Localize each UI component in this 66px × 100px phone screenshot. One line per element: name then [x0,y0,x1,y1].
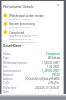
button[interactable]: System processing [9,22,35,29]
staticText: System processing [9,22,35,26]
staticText: Address [3,77,13,81]
staticText: 2024-06-10 14:41:55 [9,35,31,38]
staticText: Network [3,73,14,77]
staticText: Actual amount [3,69,21,73]
button[interactable]: Withdrawal Details [3,4,34,9]
staticText: TQ5n2x8vCmKj3wLp9Yd4Rb [25,77,60,81]
staticText: 2024-06-10 14:36:21 [9,18,31,21]
button[interactable]: Completed [9,31,31,38]
staticText: Withdrawal Details [3,4,34,9]
staticText: TRC20 [52,73,60,77]
staticText: Completed [46,52,60,56]
staticText: -- [58,90,60,94]
staticText: 1.00 USDT [47,65,60,69]
staticText: 1,499.00 USDT [42,69,60,73]
button[interactable]: TxID [3,81,60,85]
button[interactable]: Type [3,56,60,60]
button[interactable]: Actual amount [3,69,60,73]
button[interactable]: Note [3,90,60,94]
staticText: Type [3,56,9,60]
staticText: 2024-06-10 14:38:02 [9,26,31,29]
staticText: Detail Data [3,44,21,48]
button[interactable]: Withdrawal under review [9,14,44,21]
button[interactable]: Network [3,73,60,77]
button[interactable]: Help [56,3,60,7]
staticText: Fee [3,65,8,69]
staticText: Completed [9,31,25,35]
staticText: TxID [3,81,9,85]
staticText: Withdrawal amount [3,61,28,65]
button[interactable]: Withdrawal amount [3,61,60,65]
staticText: Order time [3,86,17,90]
button[interactable]: Fee [3,65,60,69]
button[interactable]: Order time [3,86,60,90]
staticText: 1,500.00 USDT [42,61,60,65]
staticText: c9f1a73e [48,81,60,85]
staticText: Status [3,52,11,56]
staticText: Withdrawal under review [9,14,44,18]
staticText: 2024-06-10 14:36:21 [35,86,60,90]
button[interactable]: Status [3,52,60,56]
staticText: Withdraw [48,56,60,60]
staticText: Please note that the arrival time depend… [9,34,39,46]
staticText: Note [3,90,9,94]
button[interactable]: Address [3,77,60,81]
